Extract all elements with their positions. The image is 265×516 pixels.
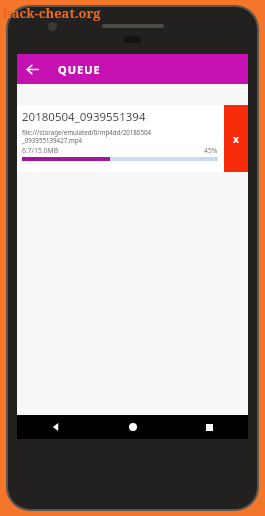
staticText: 20180504_0939551394	[22, 109, 146, 125]
staticText: 6.7/15.0MB	[22, 146, 59, 155]
button[interactable]: Recent apps	[171, 415, 248, 439]
button[interactable]: Back	[17, 415, 94, 439]
button[interactable]: Back	[17, 54, 47, 84]
button[interactable]: Cancel download	[224, 105, 248, 172]
staticText: _093955139427.mp4	[22, 136, 83, 144]
staticText: hack-cheat.org	[3, 4, 101, 22]
staticText: X	[233, 133, 240, 145]
staticText: 45%	[204, 146, 218, 155]
staticText: file:///storage/emulated/0/mp4dd/2018050…	[22, 128, 152, 136]
staticText: QUEUE	[58, 62, 101, 77]
button[interactable]: Home	[94, 415, 171, 439]
button[interactable]: 20180504_0939551394	[17, 105, 248, 172]
